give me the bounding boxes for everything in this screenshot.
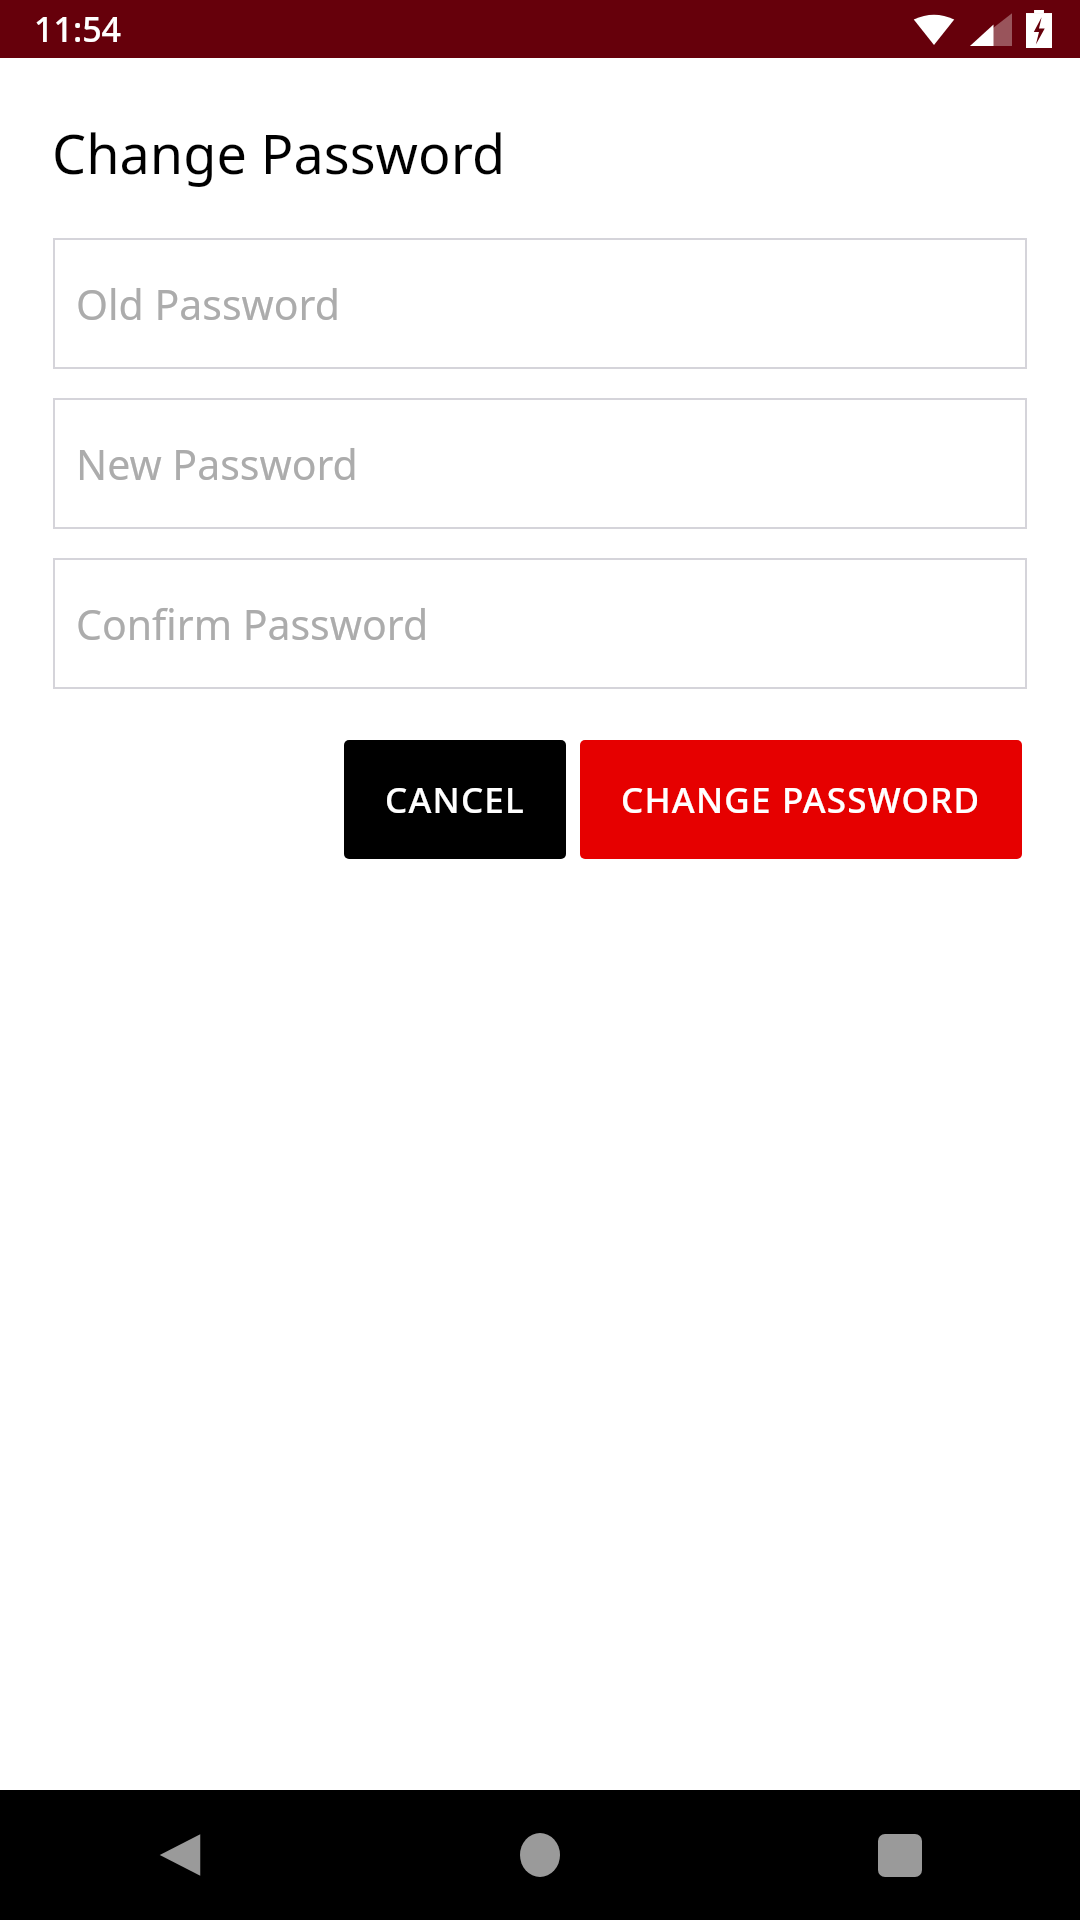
button[interactable]: CANCEL	[344, 740, 566, 859]
button[interactable]: Back	[0, 1790, 360, 1920]
staticText: Old Password	[76, 276, 340, 332]
staticText: Change Password	[52, 116, 506, 190]
button[interactable]: Confirm Password	[53, 558, 1027, 689]
staticText: CHANGE PASSWORD	[621, 776, 981, 824]
staticText: Confirm Password	[76, 596, 429, 652]
button[interactable]: New Password	[53, 398, 1027, 529]
staticText: 11:54	[34, 6, 122, 52]
button[interactable]: Old Password	[53, 238, 1027, 369]
button[interactable]: Recent apps	[720, 1790, 1080, 1920]
button[interactable]: CHANGE PASSWORD	[580, 740, 1022, 859]
staticText: New Password	[76, 436, 358, 492]
staticText: CANCEL	[385, 776, 525, 824]
button[interactable]: Home	[360, 1790, 720, 1920]
